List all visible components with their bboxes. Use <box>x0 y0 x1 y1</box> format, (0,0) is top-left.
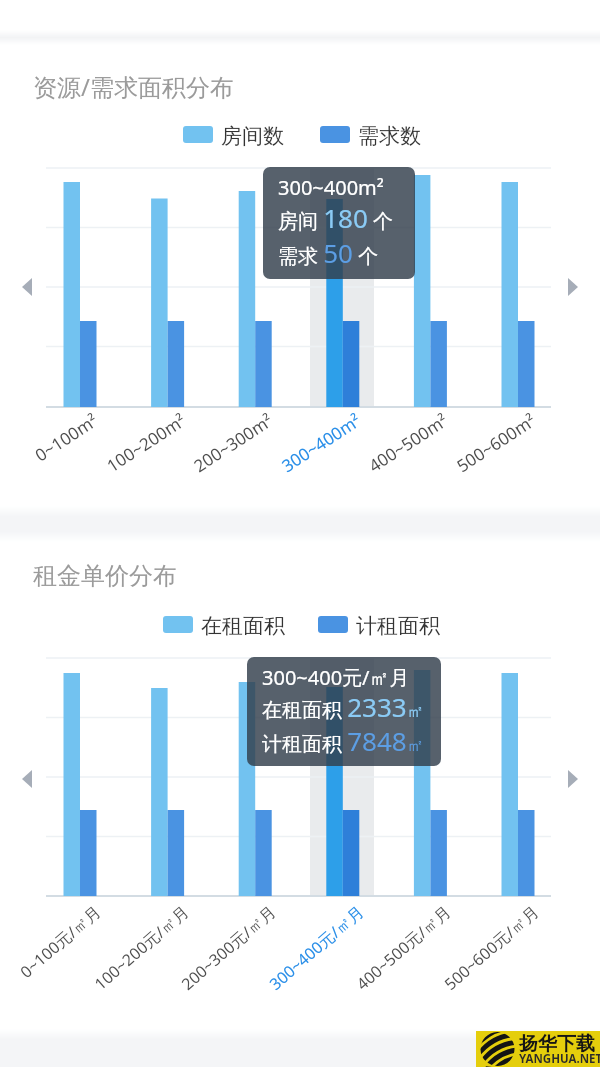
staticText: 200~300m² <box>189 409 277 477</box>
button[interactable] <box>20 276 34 298</box>
button[interactable] <box>46 658 551 896</box>
button[interactable] <box>566 276 580 298</box>
staticText: 房间数 <box>221 123 284 149</box>
staticText: 300~400m² <box>278 174 384 201</box>
button[interactable] <box>566 768 580 790</box>
staticText: 在租面积 <box>201 613 285 639</box>
staticText: 400~500元/㎡月 <box>351 901 455 995</box>
button[interactable] <box>46 168 551 407</box>
staticText: 100~200m² <box>102 409 190 477</box>
staticText: 扬华下载 <box>519 1032 595 1056</box>
staticText: 0~100m² <box>30 409 102 467</box>
staticText: 300~400m² <box>277 409 365 477</box>
staticText: 租金单价分布 <box>33 561 177 591</box>
staticText: 300~400元/㎡月 <box>262 664 410 691</box>
staticText: 房间 180 个 <box>278 200 394 235</box>
staticText: 500~600元/㎡月 <box>439 901 543 995</box>
staticText: 100~200元/㎡月 <box>89 901 193 995</box>
button[interactable]: 需求数 <box>320 123 383 149</box>
staticText: 需求数 <box>358 123 421 149</box>
staticText: 300~400元/㎡月 <box>264 901 368 995</box>
button[interactable]: 计租面积 <box>318 613 402 639</box>
button[interactable]: 房间数 <box>183 123 246 149</box>
staticText: 计租面积 <box>356 613 440 639</box>
button[interactable] <box>20 768 34 790</box>
staticText: 需求 50 个 <box>278 235 379 270</box>
staticText: 计租面积 7848㎡ <box>262 723 424 758</box>
staticText: 0~100元/㎡月 <box>15 901 105 983</box>
staticText: 400~500m² <box>364 409 452 477</box>
button[interactable]: 在租面积 <box>163 613 247 639</box>
staticText: 在租面积 2333㎡ <box>262 689 424 724</box>
staticText: 200~300元/㎡月 <box>176 901 280 995</box>
staticText: 资源/需求面积分布 <box>33 70 234 103</box>
staticText: 500~600m² <box>452 409 540 477</box>
staticText: YANGHUA.NET <box>519 1051 600 1067</box>
